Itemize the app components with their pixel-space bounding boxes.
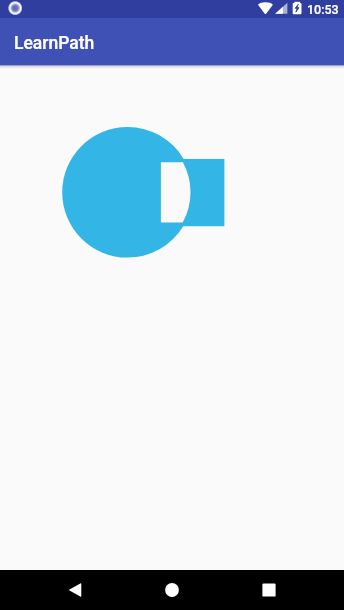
- staticText: 10:53: [307, 2, 339, 17]
- button[interactable]: Back: [59, 573, 91, 606]
- button[interactable]: Recent apps: [253, 573, 285, 606]
- button[interactable]: Home: [156, 573, 188, 606]
- staticText: LearnPath: [14, 33, 95, 54]
